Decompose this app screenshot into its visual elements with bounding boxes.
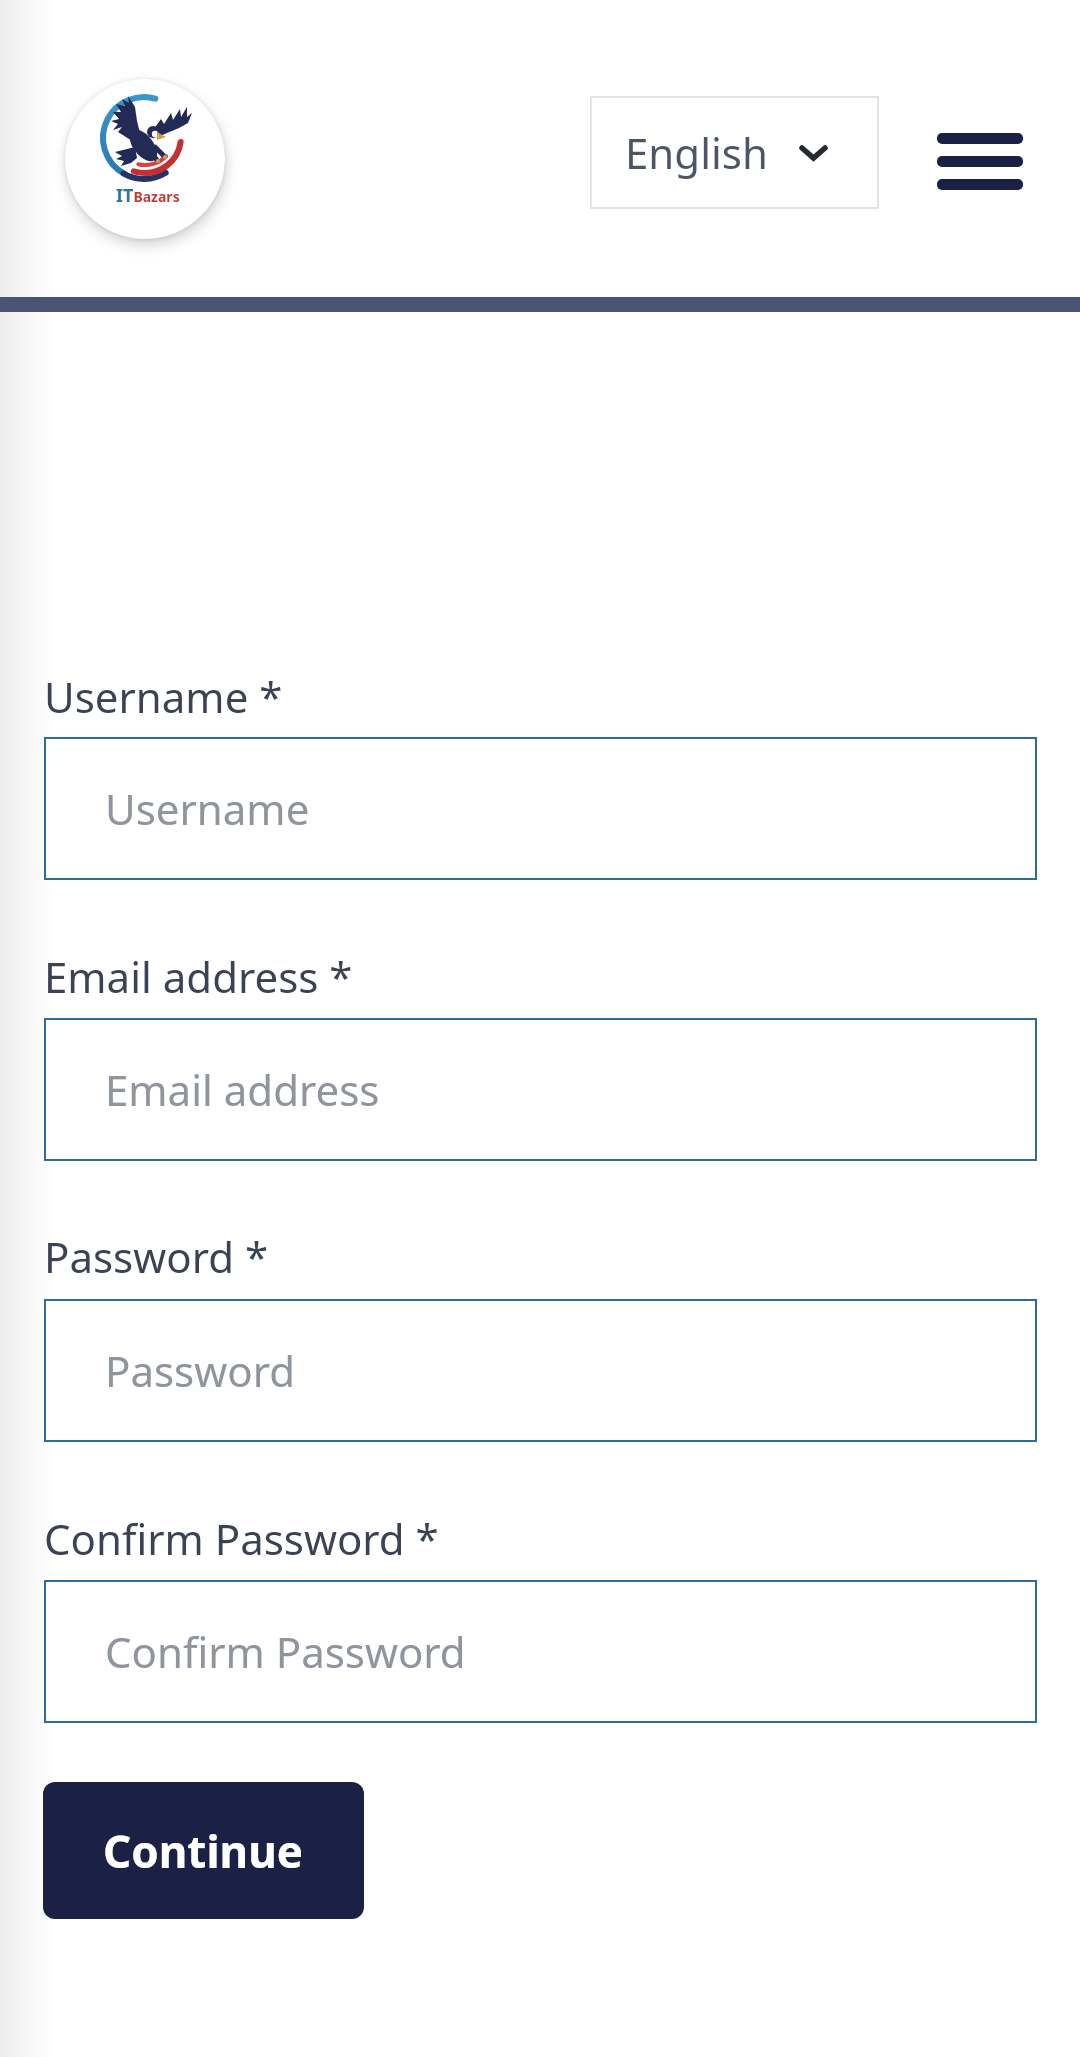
- staticText: Confirm Password: [105, 1623, 466, 1680]
- staticText: ITBazars: [116, 183, 180, 208]
- staticText: Username: [105, 780, 310, 837]
- staticText: Username *: [44, 668, 283, 725]
- button[interactable]: Password: [44, 1299, 1037, 1442]
- staticText: Password: [105, 1342, 295, 1399]
- button[interactable]: ITBazars: [65, 79, 225, 239]
- button[interactable]: Username: [44, 737, 1037, 880]
- button[interactable]: [937, 133, 1023, 190]
- staticText: Email address: [105, 1061, 380, 1118]
- staticText: Password *: [44, 1228, 269, 1285]
- staticText: Continue: [103, 1821, 304, 1881]
- staticText: Email address *: [44, 948, 353, 1005]
- button[interactable]: Continue: [43, 1782, 364, 1919]
- button[interactable]: Email address: [44, 1018, 1037, 1161]
- staticText: English: [625, 124, 768, 181]
- button[interactable]: Confirm Password: [44, 1580, 1037, 1723]
- staticText: Confirm Password *: [44, 1510, 439, 1567]
- button[interactable]: English: [590, 96, 879, 209]
